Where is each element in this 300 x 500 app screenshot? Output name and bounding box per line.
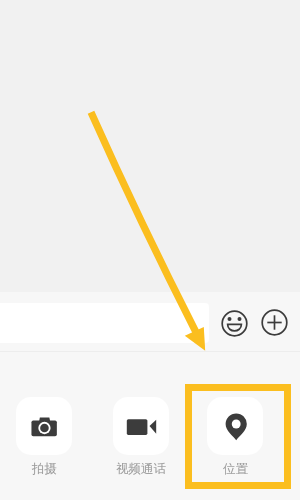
staticText: 位置 — [223, 461, 248, 477]
button[interactable]: 位置 — [207, 397, 263, 477]
button[interactable]: More — [261, 309, 288, 336]
staticText: 视频通话 — [116, 461, 166, 477]
staticText: 拍摄 — [32, 461, 57, 477]
button[interactable]: 拍摄 — [16, 397, 72, 477]
button[interactable] — [0, 303, 209, 343]
button[interactable]: Emoji — [221, 310, 248, 337]
button[interactable]: 视频通话 — [113, 397, 169, 477]
